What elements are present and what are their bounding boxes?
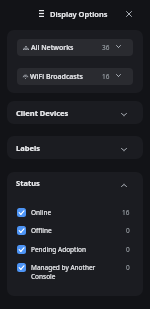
button[interactable]: Status <box>7 172 143 194</box>
button[interactable]: Managed by Another Console <box>7 258 143 287</box>
staticText: 0 <box>126 226 130 235</box>
button[interactable]: Online <box>7 203 143 221</box>
staticText: Offline <box>31 226 52 235</box>
staticText: WiFi Broadcasts <box>30 72 83 82</box>
staticText: 16 <box>102 72 110 81</box>
staticText: 0 <box>126 245 130 254</box>
staticText: All Networks <box>31 43 74 53</box>
button[interactable]: Offline <box>7 221 143 240</box>
button[interactable]: Close <box>122 7 136 20</box>
staticText: Status <box>16 178 40 188</box>
button[interactable]: All Networks <box>17 39 133 56</box>
staticText: Client Devices <box>16 108 69 118</box>
button[interactable]: Pending Adoption <box>7 240 143 258</box>
staticText: Pending Adoption <box>31 245 87 254</box>
staticText: Managed by Another Console <box>31 263 108 281</box>
button[interactable]: Client Devices <box>7 101 143 124</box>
staticText: Display Options <box>50 9 108 19</box>
button[interactable]: WiFi Broadcasts <box>17 68 133 85</box>
staticText: Labels <box>16 143 40 153</box>
staticText: 16 <box>122 208 130 217</box>
button[interactable]: Labels <box>7 136 143 159</box>
staticText: Online <box>31 208 52 217</box>
staticText: 0 <box>126 263 130 272</box>
staticText: 36 <box>102 43 110 52</box>
